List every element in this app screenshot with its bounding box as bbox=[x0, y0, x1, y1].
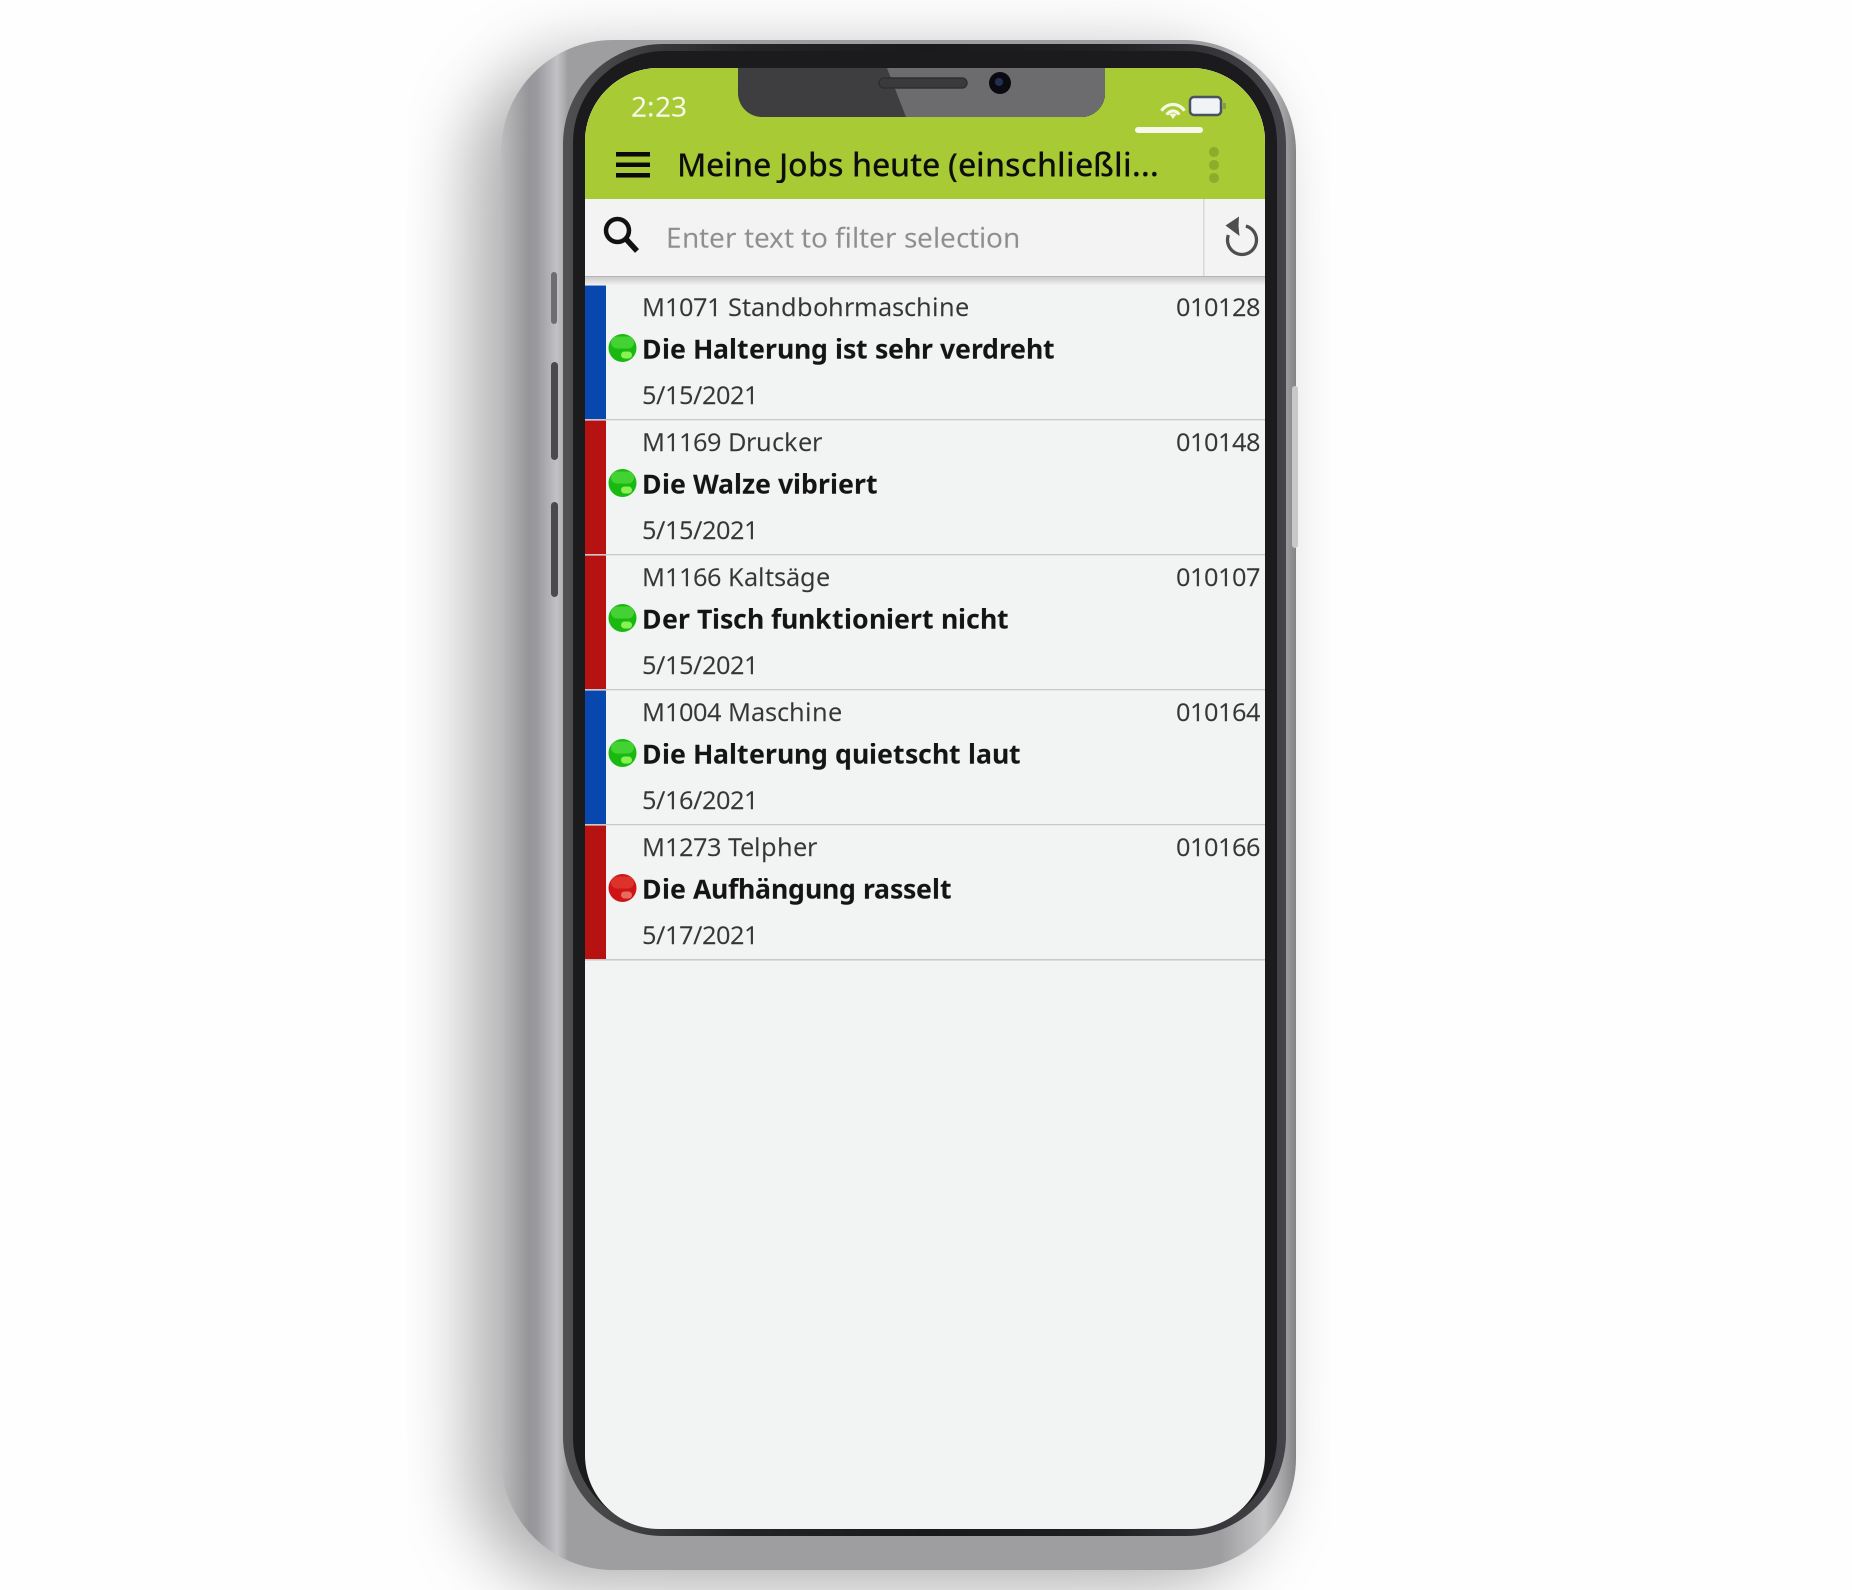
staticText: 2:23 bbox=[631, 87, 687, 125]
button[interactable]: Menu bbox=[608, 141, 658, 189]
staticText: 5/17/2021 bbox=[642, 918, 758, 951]
button[interactable]: M1273 Telpher bbox=[585, 825, 1265, 959]
staticText: 010148 bbox=[1176, 425, 1260, 458]
button[interactable]: M1169 Drucker bbox=[585, 420, 1265, 554]
staticText: 5/16/2021 bbox=[642, 783, 758, 816]
button[interactable]: More options bbox=[1197, 138, 1231, 190]
staticText: 5/15/2021 bbox=[642, 378, 758, 411]
staticText: 5/15/2021 bbox=[642, 648, 758, 681]
staticText: Die Halterung ist sehr verdreht bbox=[642, 331, 1055, 366]
staticText: Die Halterung quietscht laut bbox=[642, 736, 1021, 771]
button[interactable]: Enter text to filter selection bbox=[585, 199, 1203, 276]
staticText: Enter text to filter selection bbox=[666, 218, 1020, 256]
staticText: 5/15/2021 bbox=[642, 513, 758, 546]
staticText: 010128 bbox=[1176, 290, 1260, 323]
button[interactable]: Refresh bbox=[1204, 199, 1265, 276]
staticText: M1071 Standbohrmaschine bbox=[642, 290, 969, 323]
staticText: M1169 Drucker bbox=[642, 425, 822, 458]
staticText: Der Tisch funktioniert nicht bbox=[642, 601, 1009, 636]
staticText: Die Walze vibriert bbox=[642, 466, 878, 501]
button[interactable]: M1004 Maschine bbox=[585, 690, 1265, 824]
staticText: M1273 Telpher bbox=[642, 830, 817, 863]
staticText: M1166 Kaltsäge bbox=[642, 560, 830, 593]
button[interactable]: M1071 Standbohrmaschine bbox=[585, 285, 1265, 419]
staticText: Die Aufhängung rasselt bbox=[642, 871, 952, 906]
staticText: M1004 Maschine bbox=[642, 695, 842, 728]
staticText: Meine Jobs heute (einschließli... bbox=[677, 143, 1159, 185]
button[interactable]: M1166 Kaltsäge bbox=[585, 555, 1265, 689]
staticText: 010166 bbox=[1176, 830, 1260, 863]
staticText: 010164 bbox=[1176, 695, 1260, 728]
staticText: 010107 bbox=[1176, 560, 1260, 593]
